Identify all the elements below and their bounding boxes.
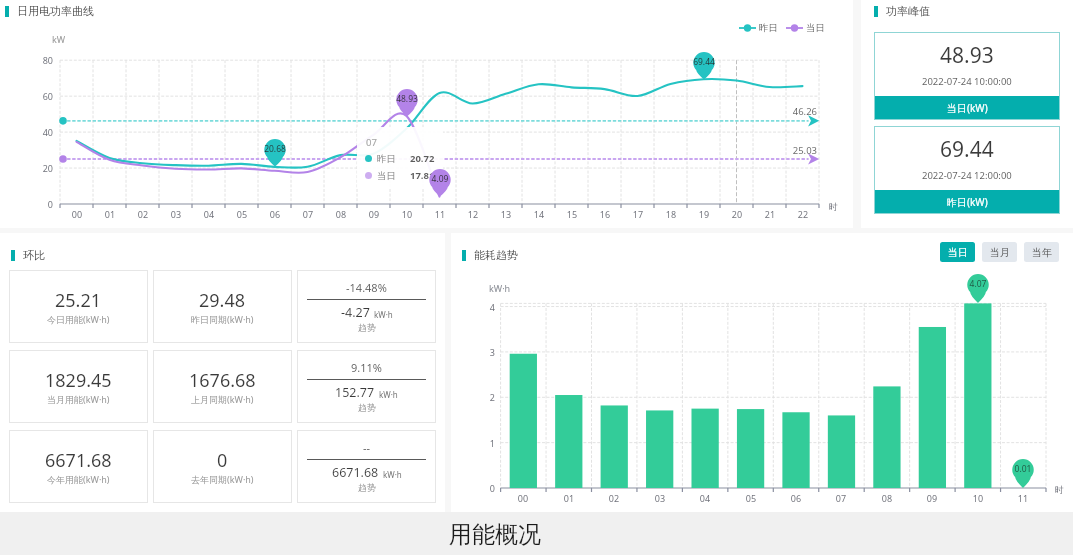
button[interactable]: 29.48 bbox=[153, 270, 292, 343]
staticText: 17.81 bbox=[410, 169, 435, 182]
staticText: 07 bbox=[366, 136, 377, 149]
staticText: 25.21 bbox=[55, 288, 102, 313]
staticText: -- bbox=[363, 440, 371, 455]
staticText: 时 bbox=[1055, 484, 1064, 495]
staticText: 当日 bbox=[377, 170, 396, 182]
staticText: 10 bbox=[391, 208, 423, 220]
button[interactable]: 当年 bbox=[1024, 242, 1059, 262]
staticText: 25.03 bbox=[760, 144, 817, 157]
button[interactable]: 1676.68 bbox=[153, 350, 292, 423]
staticText: 当月 bbox=[990, 246, 1010, 259]
staticText: 0 bbox=[474, 482, 495, 494]
staticText: 上月同期(kW·h) bbox=[191, 393, 254, 405]
button[interactable]: 48.93 bbox=[874, 32, 1060, 120]
staticText: 当年 bbox=[1032, 246, 1052, 259]
staticText: 14 bbox=[523, 208, 555, 220]
staticText: 02 bbox=[127, 208, 159, 220]
staticText: 昨日同期(kW·h) bbox=[191, 313, 254, 325]
staticText: 当日 bbox=[806, 22, 825, 34]
staticText: kW·h bbox=[383, 469, 402, 480]
staticText: 04 bbox=[193, 208, 225, 220]
staticText: 用能概况 bbox=[449, 520, 541, 549]
staticText: 功率峰值 bbox=[886, 4, 930, 18]
staticText: 9.11% bbox=[351, 360, 382, 375]
button[interactable]: 当日 bbox=[940, 242, 975, 262]
staticText: kW·h bbox=[489, 282, 511, 294]
staticText: 趋势 bbox=[358, 322, 376, 333]
staticText: kW·h bbox=[374, 309, 393, 320]
staticText: 今年用能(kW·h) bbox=[47, 473, 110, 485]
staticText: 08 bbox=[871, 492, 903, 504]
staticText: 152.77 bbox=[335, 384, 375, 401]
staticText: -4.27 bbox=[341, 304, 370, 321]
staticText: -14.48% bbox=[346, 280, 387, 295]
staticText: 1829.45 bbox=[45, 368, 112, 393]
staticText: 05 bbox=[735, 492, 767, 504]
staticText: 22 bbox=[787, 208, 819, 220]
staticText: 10 bbox=[962, 492, 994, 504]
staticText: 02 bbox=[598, 492, 630, 504]
staticText: 18 bbox=[655, 208, 687, 220]
staticText: 17 bbox=[622, 208, 654, 220]
staticText: 11 bbox=[1007, 492, 1039, 504]
staticText: 80 bbox=[28, 54, 53, 66]
staticText: 4.07 bbox=[958, 278, 998, 290]
staticText: 2 bbox=[474, 391, 495, 403]
staticText: 40 bbox=[28, 126, 53, 138]
staticText: 1676.68 bbox=[189, 368, 256, 393]
staticText: 0 bbox=[217, 448, 228, 473]
staticText: 00 bbox=[507, 492, 539, 504]
staticText: 趋势 bbox=[358, 482, 376, 493]
staticText: 04 bbox=[689, 492, 721, 504]
staticText: 12 bbox=[457, 208, 489, 220]
button[interactable]: 69.44 bbox=[874, 126, 1060, 214]
button[interactable]: 25.21 bbox=[9, 270, 148, 343]
staticText: 08 bbox=[325, 208, 357, 220]
staticText: 21 bbox=[754, 208, 786, 220]
staticText: 当日(kW) bbox=[947, 101, 988, 115]
staticText: 13 bbox=[490, 208, 522, 220]
staticText: kW bbox=[52, 33, 66, 45]
staticText: 昨日 bbox=[759, 22, 778, 34]
staticText: 09 bbox=[916, 492, 948, 504]
staticText: 0 bbox=[28, 198, 53, 210]
staticText: 今日用能(kW·h) bbox=[47, 313, 110, 325]
button[interactable]: 0 bbox=[153, 430, 292, 503]
staticText: 4 bbox=[474, 301, 495, 313]
staticText: 48.93 bbox=[940, 41, 994, 70]
staticText: 03 bbox=[160, 208, 192, 220]
staticText: 20.72 bbox=[410, 152, 435, 165]
staticText: 06 bbox=[259, 208, 291, 220]
staticText: 3 bbox=[474, 346, 495, 358]
button[interactable]: 9.11% bbox=[297, 350, 436, 423]
button[interactable]: -14.48% bbox=[297, 270, 436, 343]
staticText: 当日 bbox=[948, 246, 968, 259]
staticText: 1 bbox=[474, 437, 495, 449]
staticText: 15 bbox=[556, 208, 588, 220]
staticText: 昨日(kW) bbox=[947, 195, 988, 209]
staticText: 69.44 bbox=[940, 135, 994, 164]
staticText: 60 bbox=[28, 90, 53, 102]
staticText: 去年同期(kW·h) bbox=[191, 473, 254, 485]
button[interactable]: -- bbox=[297, 430, 436, 503]
staticText: 6671.68 bbox=[45, 448, 112, 473]
staticText: 当月用能(kW·h) bbox=[47, 393, 110, 405]
staticText: 00 bbox=[61, 208, 93, 220]
staticText: 趋势 bbox=[358, 402, 376, 413]
button[interactable]: 1829.45 bbox=[9, 350, 148, 423]
staticText: 环比 bbox=[23, 248, 45, 262]
staticText: 48.93 bbox=[385, 93, 429, 105]
staticText: 时 bbox=[829, 201, 838, 212]
button[interactable]: 6671.68 bbox=[9, 430, 148, 503]
staticText: 05 bbox=[226, 208, 258, 220]
staticText: 46.26 bbox=[760, 105, 817, 118]
staticText: 能耗趋势 bbox=[474, 248, 518, 262]
staticText: 昨日 bbox=[377, 153, 396, 165]
staticText: 4.09 bbox=[418, 173, 462, 185]
staticText: 11 bbox=[424, 208, 456, 220]
staticText: 日用电功率曲线 bbox=[17, 4, 94, 18]
staticText: 07 bbox=[292, 208, 324, 220]
staticText: 19 bbox=[688, 208, 720, 220]
staticText: 07 bbox=[825, 492, 857, 504]
button[interactable]: 当月 bbox=[982, 242, 1017, 262]
